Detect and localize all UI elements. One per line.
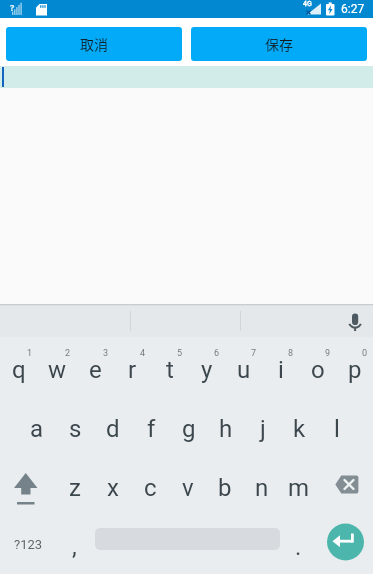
button[interactable]: , [56, 514, 93, 574]
staticText: c [144, 474, 157, 502]
button[interactable]: n [243, 455, 280, 514]
staticText: y [201, 356, 213, 384]
staticText: s [69, 415, 82, 443]
staticText: o [311, 356, 325, 384]
staticText: 取消 [80, 34, 108, 54]
button[interactable]: j [244, 396, 281, 455]
staticText: 6 [214, 348, 220, 359]
button[interactable]: x [94, 455, 132, 514]
button[interactable]: p [336, 337, 373, 396]
button[interactable]: c [132, 455, 169, 514]
button[interactable]: e [76, 337, 114, 396]
staticText: r [128, 356, 137, 384]
staticText: n [255, 474, 269, 502]
button[interactable]: y [188, 337, 225, 396]
staticText: x [107, 474, 119, 502]
button[interactable]: m [280, 455, 317, 514]
staticText: 4G [303, 0, 312, 8]
button[interactable]: s [56, 396, 94, 455]
staticText: t [166, 356, 174, 384]
button[interactable]: q [0, 337, 38, 396]
button[interactable] [93, 514, 280, 574]
button[interactable] [345, 311, 365, 331]
staticText: j [260, 415, 266, 443]
staticText: l [334, 415, 340, 443]
staticText: g [182, 415, 196, 443]
staticText: m [288, 474, 310, 502]
button[interactable]: h [207, 396, 244, 455]
staticText: h [219, 415, 233, 443]
staticText: 2 [65, 348, 71, 359]
staticText: u [237, 356, 251, 384]
staticText: q [12, 356, 26, 384]
button[interactable]: ?123 [0, 514, 56, 574]
staticText: ? [10, 1, 15, 13]
staticText: k [293, 415, 306, 443]
staticText: 保存 [265, 34, 293, 54]
button[interactable]: w [38, 337, 76, 396]
staticText: 7 [251, 348, 257, 359]
staticText: 1 [27, 348, 33, 359]
button[interactable]: o [299, 337, 336, 396]
staticText: d [106, 415, 120, 443]
button[interactable]: a [18, 396, 56, 455]
button[interactable]: d [94, 396, 132, 455]
staticText: f [147, 415, 156, 443]
button[interactable]: 取消 [6, 27, 182, 61]
staticText: 6:27 [341, 2, 365, 16]
staticText: e [89, 356, 102, 384]
button[interactable]: v [169, 455, 206, 514]
button[interactable]: i [262, 337, 299, 396]
staticText: ?123 [14, 537, 43, 552]
button[interactable]: z [56, 455, 94, 514]
staticText: p [348, 356, 362, 384]
staticText: i [278, 356, 284, 384]
button[interactable]: t [151, 337, 188, 396]
button[interactable]: r [114, 337, 151, 396]
staticText: 8 [288, 348, 294, 359]
button[interactable]: u [225, 337, 262, 396]
staticText: . [295, 533, 302, 561]
staticText: 4 [140, 348, 146, 359]
button[interactable]: b [206, 455, 243, 514]
staticText: b [218, 474, 232, 502]
button[interactable]: g [170, 396, 207, 455]
staticText: w [48, 356, 67, 384]
staticText: a [30, 415, 44, 443]
staticText: , [72, 533, 77, 561]
staticText: 5 [177, 348, 183, 359]
staticText: z [69, 474, 81, 502]
button[interactable]: k [281, 396, 318, 455]
button[interactable]: 保存 [191, 27, 367, 61]
button[interactable]: l [318, 396, 355, 455]
staticText: 0 [362, 348, 368, 359]
staticText: 9 [325, 348, 331, 359]
button[interactable] [317, 455, 373, 514]
button[interactable] [317, 514, 373, 574]
button[interactable] [0, 455, 56, 514]
button[interactable]: f [132, 396, 170, 455]
button[interactable]: . [280, 514, 317, 574]
staticText: v [182, 474, 194, 502]
staticText: 3 [103, 348, 109, 359]
